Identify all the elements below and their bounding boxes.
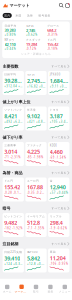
staticText: ナスダック [26,38,41,42]
staticText: ソフトバンク [4,108,22,112]
staticText: +492 +6.21% [4,120,22,123]
staticText: -71 -2.31% [4,155,20,159]
button[interactable]: TOPIX [25,71,47,95]
staticText: 値上がり率上位 [3,99,31,104]
button[interactable]: 資産 [43,282,58,296]
staticText: 値下がり率 [3,135,23,140]
button[interactable]: ソフトバンク [3,106,24,130]
button[interactable]: JPX400 [48,71,69,95]
staticText: +0.44% [5,47,16,51]
button[interactable]: トヨタ [48,106,69,130]
button[interactable]: すべて見る [52,171,69,175]
staticText: 8,421 [4,113,17,120]
button[interactable]: お知らせ [65,3,69,8]
staticText: 298.4 [50,219,63,226]
staticText: 1,684.22 [50,77,68,84]
staticText: グロース [47,24,59,28]
staticText: ファナック [27,144,42,147]
button[interactable]: 暗号資産 [37,13,52,18]
staticText: 暗号 [3,206,11,211]
button[interactable]: 日経225先物 [3,248,24,272]
staticText: 米国 [16,14,22,17]
staticText: 為替・商品 [3,170,23,175]
staticText: 167.88 [27,184,43,191]
button[interactable]: 三菱商事 [3,142,24,166]
staticText: イーサリアム [27,215,45,218]
staticText: 19,284 [26,42,37,47]
staticText: +105 +3.42% [50,120,68,123]
staticText: 注目銘柄 [3,241,19,246]
staticText: +421 +4.88% [27,120,45,123]
staticText: すべて見る [52,136,67,139]
staticText: 日経平均 [5,24,17,28]
button[interactable]: 国内 [3,13,12,18]
staticText: 金 [50,179,53,183]
staticText: 2,745.11 [27,77,45,84]
staticText: +9.11 +0.55% [50,85,68,88]
button[interactable]: すべて見る [52,135,69,139]
button[interactable]: リップル [48,213,69,237]
staticText: すべて見る [52,242,67,245]
staticText: 684.2 [47,28,56,33]
staticText: -7.1 -1.35% [27,226,44,230]
button[interactable]: ビットコイン [3,213,24,237]
button[interactable]: すべて見る [52,206,69,210]
staticText: 取引 [33,290,39,293]
staticText: 9,482 [4,219,17,226]
staticText: -0.31% [47,33,57,36]
button[interactable]: 原油 [48,248,69,272]
staticText: -0.12% [26,47,36,50]
staticText: TOPIX [27,73,35,76]
staticText: ドル円 [4,179,13,183]
staticText: 2,745 [26,28,35,33]
staticText: 12,940 [50,184,66,191]
staticText: KDDI [50,144,57,147]
button[interactable]: 米国 [14,13,23,18]
button[interactable]: KDDI [48,142,69,166]
button[interactable]: 為替 [25,13,35,18]
staticText: 155.42 [47,42,58,47]
staticText: ドル円 [47,38,56,42]
staticText: -0.35 -0.21% [27,191,45,194]
staticText: -182 -1.92% [4,226,22,230]
staticText: 3,187 [50,113,63,120]
staticText: 39,283 [5,28,16,33]
staticText: 4,225 [27,148,40,155]
button[interactable]: ファナック [25,142,47,166]
staticText: 三菱商事 [4,144,16,147]
staticText: シェア・詳細はこちら [21,52,51,55]
staticText: 任天堂 [27,108,36,112]
staticText: 11,204 [50,255,66,262]
button[interactable]: 取引 [29,282,43,296]
staticText: ユーロ円 [27,179,39,183]
button[interactable]: イーサリアム [25,213,47,237]
button[interactable]: ホーム [0,282,14,296]
button[interactable]: S&P500 [25,248,47,272]
button[interactable]: 金 [48,177,69,201]
button[interactable]: すべて見る [52,64,69,68]
staticText: +0.62% [26,33,37,37]
button[interactable]: 日経平均 [3,71,24,95]
button[interactable]: マーケット [14,282,29,296]
staticText: TOPIX [26,24,34,28]
staticText: -0.28 -0.18% [4,191,22,194]
button[interactable]: メニュー [58,282,72,296]
staticText: 39,410 [4,255,20,262]
staticText: -1.9 -0.62% [50,226,67,230]
button[interactable]: ドル円 [3,177,24,201]
staticText: -69 -1.54% [50,156,66,159]
button[interactable]: 検索 [59,3,64,8]
staticText: 5,842 [27,255,40,262]
staticText: すべて見る [52,65,67,68]
staticText: すべて見る [52,100,67,103]
button[interactable]: ユーロ円 [25,177,47,201]
staticText: +0.80% [5,33,16,36]
button[interactable]: 任天堂 [25,106,47,130]
staticText: すべて見る [52,207,67,210]
staticText: +12.8 +0.22% [27,262,45,266]
button[interactable]: すべて見る [52,100,69,104]
button[interactable]: すべて見る [52,242,69,246]
staticText: 9,102 [27,113,40,120]
staticText: リップル [50,215,62,218]
staticText: 日経平均 [4,73,16,76]
